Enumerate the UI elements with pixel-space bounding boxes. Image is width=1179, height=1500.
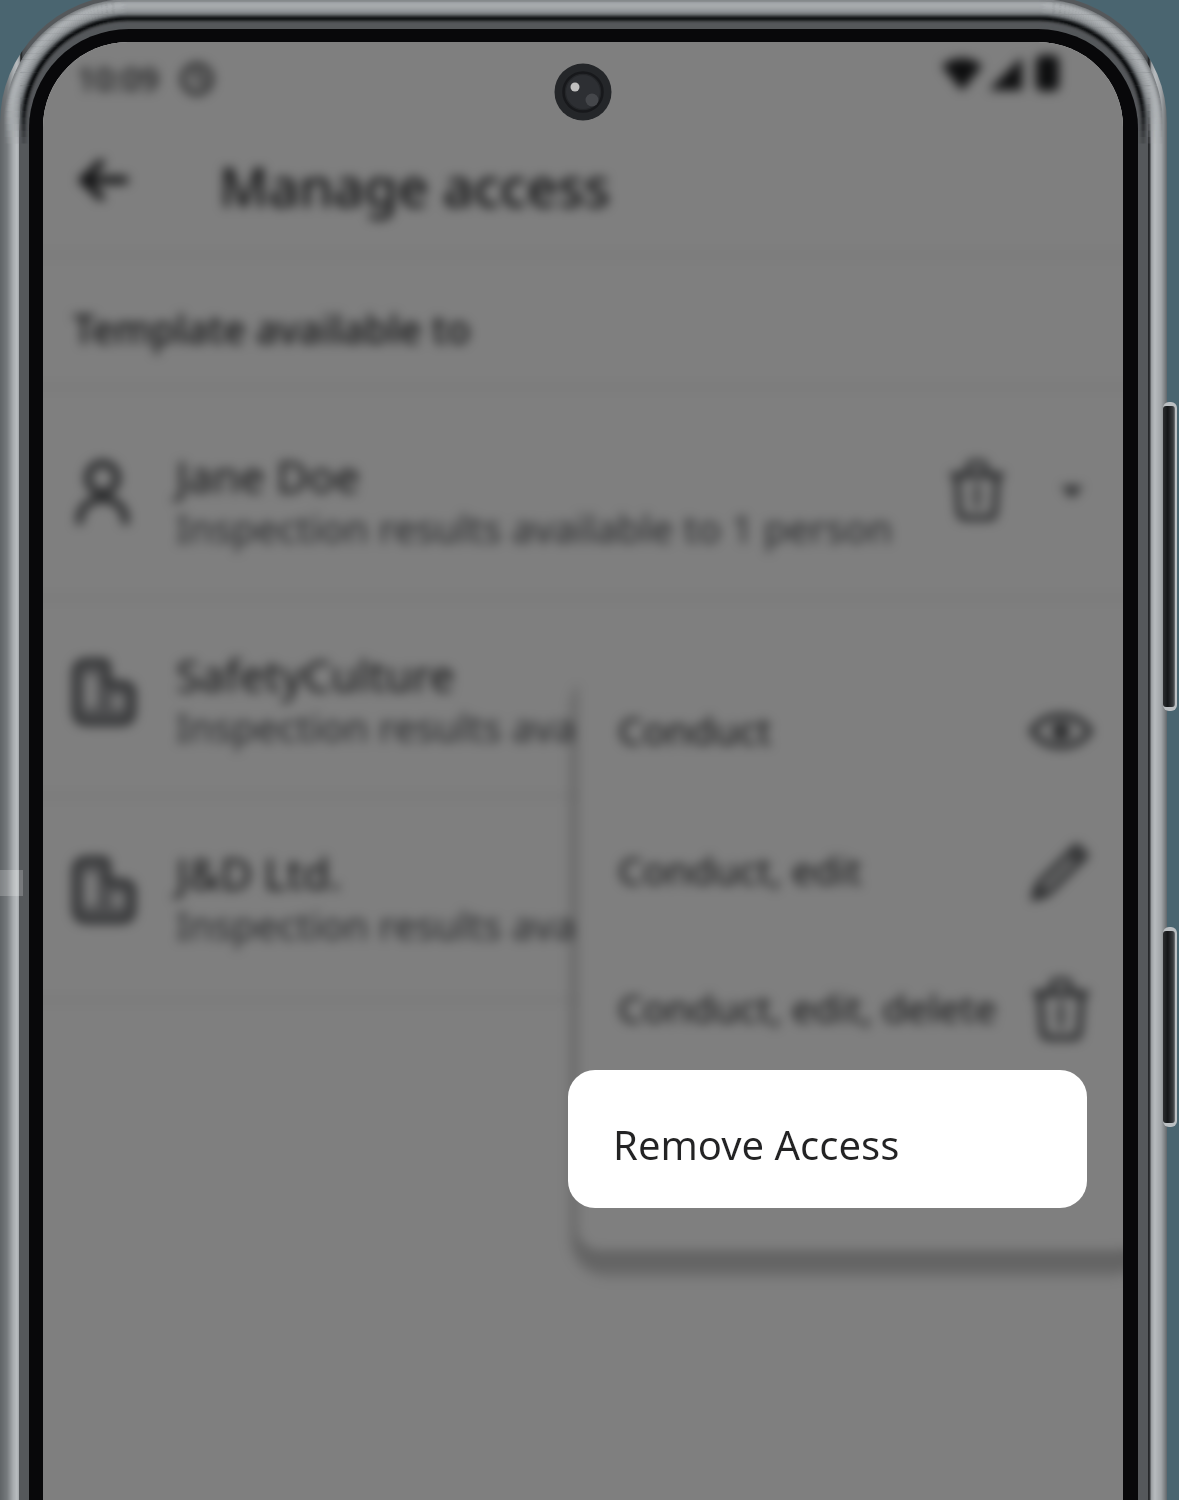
staticText: Conduct, edit xyxy=(618,843,862,896)
button[interactable]: Conduct, edit, delete xyxy=(578,939,1123,1079)
button[interactable]: Delete xyxy=(939,452,1015,528)
staticText: Conduct xyxy=(618,703,772,756)
staticText: 10:09 xyxy=(77,57,159,101)
staticText: SafetyCulture xyxy=(176,645,455,705)
staticText: Manage access xyxy=(219,149,611,223)
staticText: Inspection results available to all user… xyxy=(176,898,884,951)
button[interactable]: J&D Ltd. xyxy=(43,795,1123,999)
button[interactable]: Conduct, edit xyxy=(578,801,1123,941)
button[interactable]: More options xyxy=(1044,464,1100,520)
staticText: J&D Ltd. xyxy=(176,843,342,903)
button[interactable]: Jane Doe xyxy=(43,386,1123,597)
staticText: Jane Doe xyxy=(176,446,360,506)
staticText: Inspection results available to 1 person xyxy=(176,501,893,554)
button[interactable]: Conduct xyxy=(578,661,1123,801)
button[interactable]: Remove Access xyxy=(568,1070,1087,1208)
button[interactable]: Back xyxy=(61,138,145,222)
button[interactable]: SafetyCulture xyxy=(43,597,1123,795)
staticText: Inspection results available to all user… xyxy=(176,700,884,753)
staticText: Template available to xyxy=(73,302,471,355)
staticText: Conduct, edit, delete xyxy=(618,981,997,1034)
staticText: Remove Access xyxy=(613,1117,900,1171)
